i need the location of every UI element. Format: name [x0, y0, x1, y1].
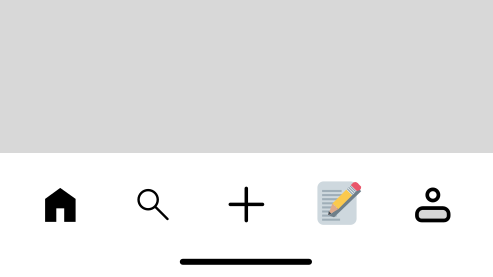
button[interactable]: Home	[13, 169, 106, 239]
button[interactable]: Search	[107, 169, 200, 239]
button[interactable]: Notes	[293, 169, 386, 239]
button[interactable]: Profile	[386, 169, 479, 239]
button[interactable]: Create	[200, 169, 293, 239]
